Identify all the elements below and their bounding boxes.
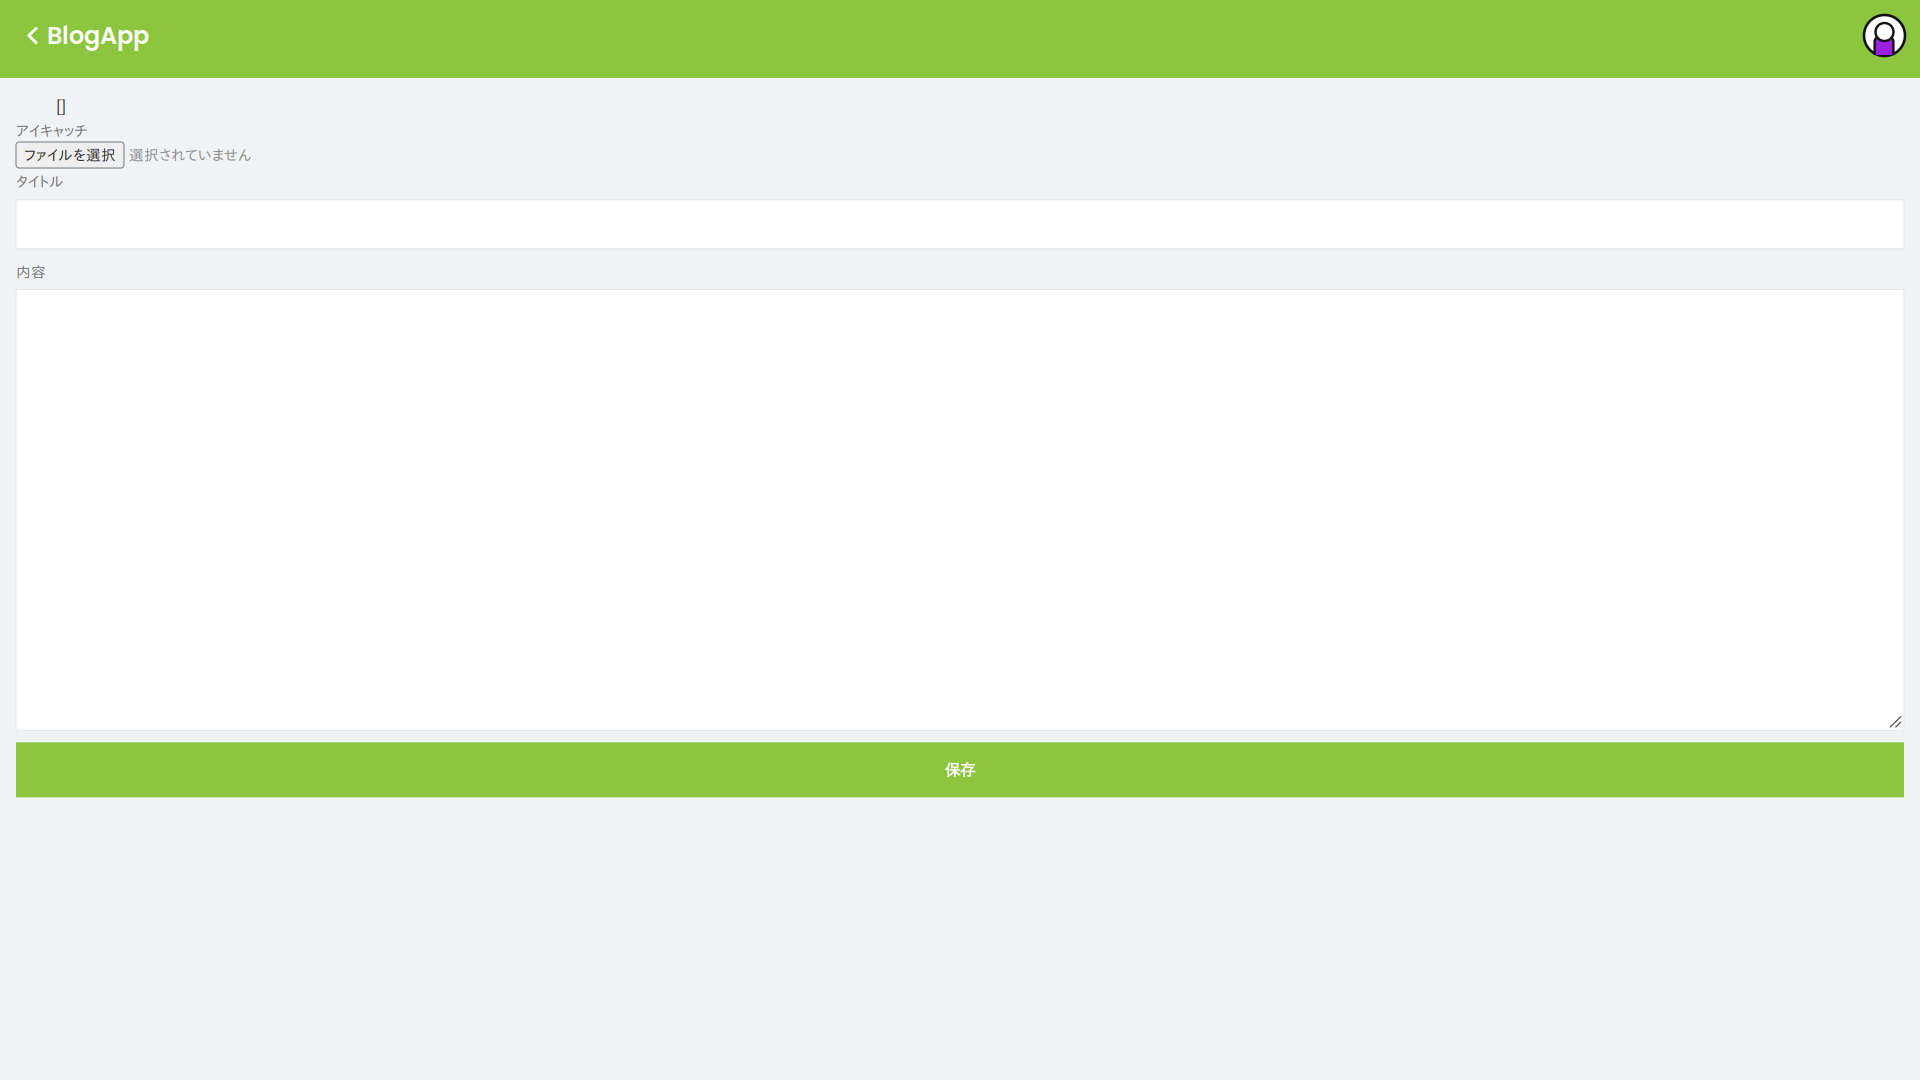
staticText: 保存 bbox=[945, 760, 975, 779]
staticText: BlogApp bbox=[47, 19, 149, 52]
staticText: 選択されていません bbox=[129, 148, 251, 162]
staticText: 内容 bbox=[16, 265, 46, 279]
staticText: アイキャッチ bbox=[16, 123, 87, 138]
button[interactable]: 保存 bbox=[16, 742, 1904, 797]
staticText: ファイルを選択 bbox=[24, 148, 116, 162]
staticText: [] bbox=[56, 97, 66, 114]
staticText: タイトル bbox=[16, 174, 64, 189]
button[interactable]: ファイルを選択 bbox=[16, 142, 124, 168]
button[interactable]: Account bbox=[1864, 0, 1920, 78]
button[interactable]: BlogApp bbox=[0, 0, 163, 78]
